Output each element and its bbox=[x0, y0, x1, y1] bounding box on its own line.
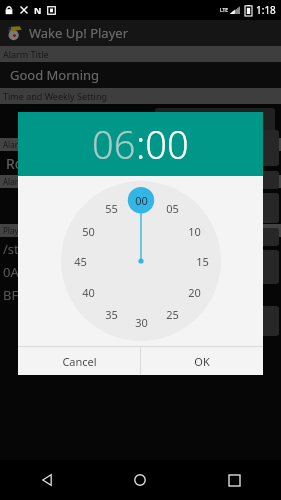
staticText: Play Mode bbox=[3, 225, 43, 236]
button[interactable] bbox=[257, 130, 279, 166]
button[interactable] bbox=[257, 306, 279, 336]
staticText: 0A- bbox=[3, 263, 23, 281]
button[interactable]: Back bbox=[0, 460, 93, 500]
staticText: Alarm Day bbox=[3, 139, 42, 150]
button[interactable] bbox=[257, 193, 279, 223]
staticText: 25 bbox=[166, 307, 179, 322]
staticText: Good Morning bbox=[10, 66, 100, 84]
button[interactable] bbox=[155, 108, 275, 134]
button[interactable]: Home bbox=[93, 460, 187, 500]
staticText: 50 bbox=[82, 224, 95, 239]
staticText: N bbox=[34, 4, 42, 16]
staticText: 15 bbox=[196, 254, 209, 269]
staticText: Cancel bbox=[62, 354, 97, 369]
staticText: 10 bbox=[188, 224, 201, 239]
button[interactable] bbox=[257, 228, 279, 246]
staticText: LTE bbox=[220, 7, 229, 14]
staticText: 30 bbox=[135, 315, 148, 330]
staticText: 45 bbox=[74, 254, 87, 269]
staticText: BF bbox=[3, 286, 19, 304]
staticText: /storage bbox=[3, 240, 55, 258]
staticText: 35 bbox=[105, 307, 118, 322]
staticText: Alarm Volume bbox=[3, 176, 57, 187]
staticText: 55 bbox=[105, 201, 118, 216]
staticText: 05 bbox=[166, 201, 179, 216]
button[interactable]: OK bbox=[141, 347, 263, 375]
staticText: Alarm Title bbox=[3, 48, 49, 60]
staticText: Wake Up! Player bbox=[29, 24, 128, 42]
staticText: 00 bbox=[135, 193, 148, 208]
button[interactable]: Cancel bbox=[18, 347, 140, 375]
button[interactable] bbox=[257, 171, 279, 189]
button[interactable]: 06 bbox=[18, 112, 263, 176]
staticText: 1:18 bbox=[256, 3, 276, 17]
button[interactable] bbox=[257, 250, 279, 284]
staticText: Row bbox=[6, 154, 34, 173]
staticText: :00 bbox=[136, 118, 189, 170]
staticText: Time and Weekly Setting bbox=[3, 90, 107, 102]
staticText: 40 bbox=[82, 285, 95, 300]
button[interactable]: Recent apps bbox=[187, 460, 281, 500]
staticText: OK bbox=[194, 354, 210, 369]
staticText: 20 bbox=[188, 285, 201, 300]
staticText: 06 bbox=[92, 118, 136, 170]
